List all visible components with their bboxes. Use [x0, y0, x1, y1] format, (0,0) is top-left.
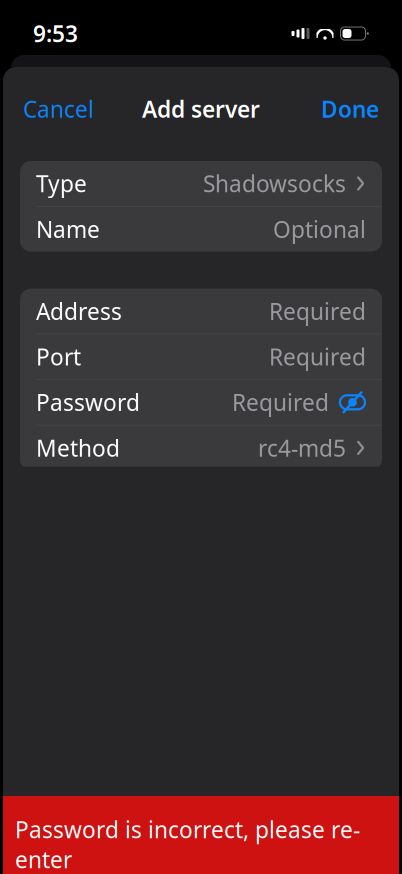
staticText: Add server — [142, 94, 260, 124]
staticText: Method — [36, 433, 120, 463]
staticText: Password — [36, 387, 140, 417]
staticText: Type — [36, 168, 87, 198]
button[interactable]: Type — [20, 161, 382, 206]
staticText: Done — [321, 94, 379, 124]
button[interactable]: Name — [20, 207, 382, 252]
staticText: Password is incorrect, please re-enter — [15, 814, 360, 874]
staticText: Optional — [273, 214, 366, 244]
button[interactable]: Done — [304, 84, 396, 134]
staticText: Name — [36, 214, 100, 244]
staticText: Address — [36, 296, 122, 326]
staticText: Port — [36, 342, 81, 372]
button[interactable]: Method — [20, 425, 382, 470]
button[interactable]: Port — [20, 334, 382, 379]
button[interactable]: Show password — [329, 386, 366, 418]
staticText: Required — [269, 342, 366, 372]
button[interactable]: Cancel — [6, 84, 111, 134]
staticText: Required — [269, 296, 366, 326]
staticText: Required — [232, 387, 329, 417]
staticText: rc4-md5 — [258, 433, 346, 463]
staticText: Cancel — [23, 94, 94, 124]
button[interactable]: Address — [20, 289, 382, 334]
staticText: Shadowsocks — [203, 168, 346, 198]
staticText: 9:53 — [33, 18, 78, 48]
